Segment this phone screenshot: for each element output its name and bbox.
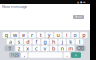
staticText: j (62, 38, 63, 45)
staticText: f (35, 38, 37, 45)
button[interactable]: l (76, 39, 83, 44)
button[interactable]: j (58, 39, 66, 44)
staticText: v (43, 45, 46, 52)
button[interactable]: g (41, 39, 49, 44)
button[interactable]: m (67, 45, 75, 51)
staticText: i (66, 31, 67, 38)
staticText: d (26, 38, 29, 45)
button[interactable] (28, 52, 62, 58)
button[interactable]: ⌫ (76, 45, 86, 51)
staticText: p (82, 31, 85, 38)
button[interactable]: z (15, 45, 23, 51)
button[interactable]: ⌕ (71, 52, 81, 58)
staticText: t (40, 31, 42, 38)
button[interactable]: p (80, 32, 87, 38)
staticText: ?123 (10, 52, 18, 58)
button[interactable]: Send (73, 15, 84, 19)
staticText: w (13, 31, 17, 38)
button[interactable]: ?123 (9, 52, 20, 58)
button[interactable]: x (24, 45, 32, 51)
staticText: h (52, 38, 55, 45)
staticText: ▬ (83, 0, 86, 3)
button[interactable]: n (58, 45, 66, 51)
button[interactable]: y (45, 32, 53, 38)
button[interactable]: ⇧ (4, 45, 14, 51)
staticText: , (24, 51, 25, 59)
staticText: g (43, 38, 46, 45)
staticText: ⌫ (77, 45, 85, 51)
staticText: New message (2, 4, 27, 9)
staticText: k (69, 38, 72, 45)
button[interactable]: a (7, 39, 14, 44)
staticText: z (18, 45, 21, 52)
button[interactable]: t (37, 32, 44, 38)
staticText: u (56, 31, 59, 38)
staticText: n (61, 45, 64, 52)
staticText: Send (75, 15, 82, 19)
button[interactable]: s (15, 39, 23, 44)
staticText: m (68, 45, 73, 52)
staticText: b (52, 45, 55, 52)
staticText: . (66, 51, 67, 59)
button[interactable]: w (11, 32, 19, 38)
button[interactable]: r (28, 32, 36, 38)
staticText: s (18, 38, 21, 45)
button[interactable]: , (21, 52, 27, 58)
button[interactable]: h (50, 39, 57, 44)
staticText: ▲ (77, 0, 79, 3)
staticText: o (74, 31, 77, 38)
button[interactable]: . (63, 52, 70, 58)
button[interactable]: e (20, 32, 27, 38)
staticText: c (35, 45, 38, 52)
button[interactable]: q (2, 32, 10, 38)
staticText: ⇧ (7, 45, 11, 51)
button[interactable]: b (50, 45, 57, 51)
button[interactable]: d (24, 39, 32, 44)
button[interactable]: c (33, 45, 40, 51)
button[interactable]: f (33, 39, 40, 44)
staticText: y (48, 31, 51, 38)
staticText: e (22, 31, 25, 38)
button[interactable]: u (54, 32, 62, 38)
staticText: l (79, 38, 80, 45)
button[interactable]: v (41, 45, 49, 51)
button[interactable]: k (67, 39, 75, 44)
button[interactable]: o (71, 32, 79, 38)
staticText: r (31, 31, 33, 38)
staticText: x (26, 45, 29, 52)
staticText: a (9, 38, 12, 45)
staticText: ● (80, 0, 82, 3)
staticText: ⌕ (74, 52, 77, 58)
staticText: q (5, 31, 8, 38)
button[interactable]: i (63, 32, 70, 38)
